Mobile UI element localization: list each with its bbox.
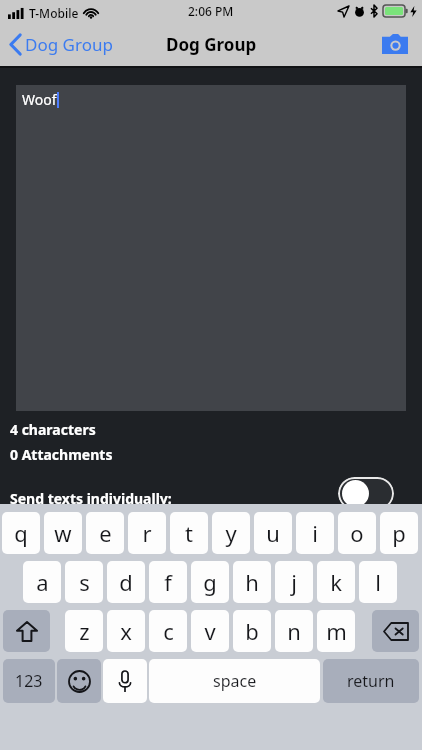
button[interactable]: w	[44, 512, 82, 554]
button[interactable]: o	[338, 512, 376, 554]
staticText: s	[79, 567, 90, 597]
button[interactable]: Dictation	[103, 659, 147, 703]
button[interactable]: Emoji	[57, 659, 101, 703]
button[interactable]: k	[317, 561, 355, 603]
button[interactable]: return	[323, 659, 419, 703]
staticText: y	[225, 518, 237, 548]
staticText: f	[164, 567, 172, 597]
staticText: n	[287, 616, 301, 646]
staticText: m	[326, 616, 347, 646]
button[interactable]: i	[296, 512, 334, 554]
button[interactable]: d	[107, 561, 145, 603]
button[interactable]: m	[317, 610, 355, 652]
button[interactable]: Dog Group	[0, 27, 121, 62]
staticText: u	[266, 518, 280, 548]
staticText: r	[142, 518, 152, 548]
button[interactable]: Woof	[16, 85, 406, 411]
staticText: i	[312, 518, 318, 548]
button[interactable]: u	[254, 512, 292, 554]
staticText: t	[185, 518, 193, 548]
button[interactable]: space	[149, 659, 320, 703]
staticText: w	[54, 518, 72, 548]
button[interactable]: c	[149, 610, 187, 652]
staticText: k	[330, 567, 342, 597]
staticText: 4 characters	[10, 420, 96, 439]
button[interactable]: p	[380, 512, 418, 554]
staticText: g	[203, 567, 217, 597]
staticText: e	[99, 518, 112, 548]
button[interactable]: n	[275, 610, 313, 652]
staticText: Send texts individually:	[10, 489, 172, 508]
button[interactable]: a	[23, 561, 61, 603]
staticText: q	[14, 518, 28, 548]
button[interactable]: Send	[322, 496, 389, 530]
staticText: j	[291, 567, 297, 597]
staticText: b	[245, 616, 259, 646]
button[interactable]: Delete	[372, 610, 419, 652]
staticText: 2:06 PM	[188, 3, 234, 19]
staticText: l	[375, 567, 381, 597]
button[interactable]: v	[191, 610, 229, 652]
staticText: Dog Group	[25, 33, 113, 56]
staticText: v	[204, 616, 216, 646]
staticText: 123	[15, 670, 43, 692]
button[interactable]: r	[128, 512, 166, 554]
button[interactable]: 123	[3, 659, 55, 703]
button[interactable]: h	[233, 561, 271, 603]
button[interactable]: f	[149, 561, 187, 603]
button[interactable]: s	[65, 561, 103, 603]
staticText: x	[120, 616, 132, 646]
staticText: Woof	[22, 90, 57, 109]
button[interactable]: z	[65, 610, 103, 652]
staticText: return	[347, 670, 395, 692]
button[interactable]: Camera	[368, 24, 422, 64]
button[interactable]: e	[86, 512, 124, 554]
button[interactable]: g	[191, 561, 229, 603]
staticText: 0 Attachments	[10, 445, 113, 464]
button[interactable]: y	[212, 512, 250, 554]
staticText: c	[163, 616, 174, 646]
staticText: Dog Group	[166, 33, 257, 56]
button[interactable]: x	[107, 610, 145, 652]
button[interactable]: b	[233, 610, 271, 652]
staticText: o	[350, 518, 364, 548]
button[interactable]: q	[2, 512, 40, 554]
staticText: space	[213, 670, 257, 692]
button[interactable]: Send texts individually toggle	[338, 477, 394, 510]
staticText: T-Mobile	[29, 5, 79, 21]
staticText: a	[36, 567, 49, 597]
staticText: d	[119, 567, 133, 597]
staticText: Send	[332, 500, 379, 526]
staticText: h	[245, 567, 259, 597]
button[interactable]: j	[275, 561, 313, 603]
button[interactable]: l	[359, 561, 397, 603]
button[interactable]: Shift	[3, 610, 50, 652]
button[interactable]: t	[170, 512, 208, 554]
staticText: z	[79, 616, 90, 646]
staticText: p	[392, 518, 406, 548]
